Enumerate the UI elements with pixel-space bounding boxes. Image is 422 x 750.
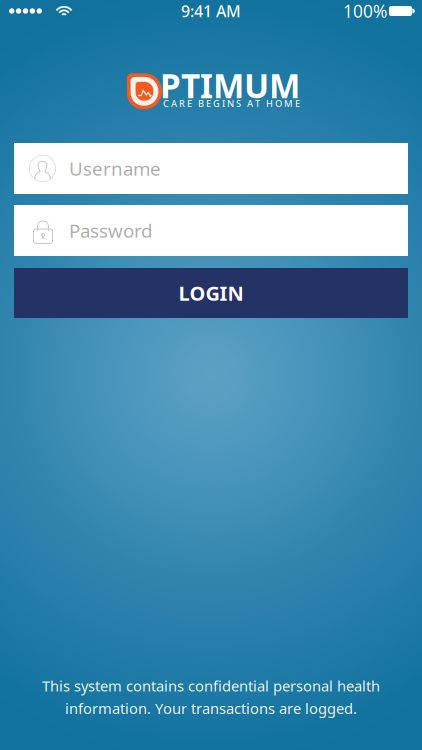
button[interactable]: Username (14, 143, 408, 194)
staticText: Username (69, 156, 161, 181)
staticText: LOGIN (178, 280, 243, 306)
staticText: 100% (343, 0, 387, 22)
staticText: 9:41 AM (181, 0, 241, 22)
staticText: PTIMUM (160, 63, 300, 108)
staticText: Password (69, 218, 152, 243)
staticText: C A R E B E G I N S A T H O M E (163, 97, 300, 110)
staticText: This system contains confidential person… (42, 676, 380, 695)
staticText: information. Your transactions are logge… (65, 698, 357, 718)
button[interactable]: LOGIN (14, 268, 408, 318)
button[interactable]: Password (14, 205, 408, 256)
